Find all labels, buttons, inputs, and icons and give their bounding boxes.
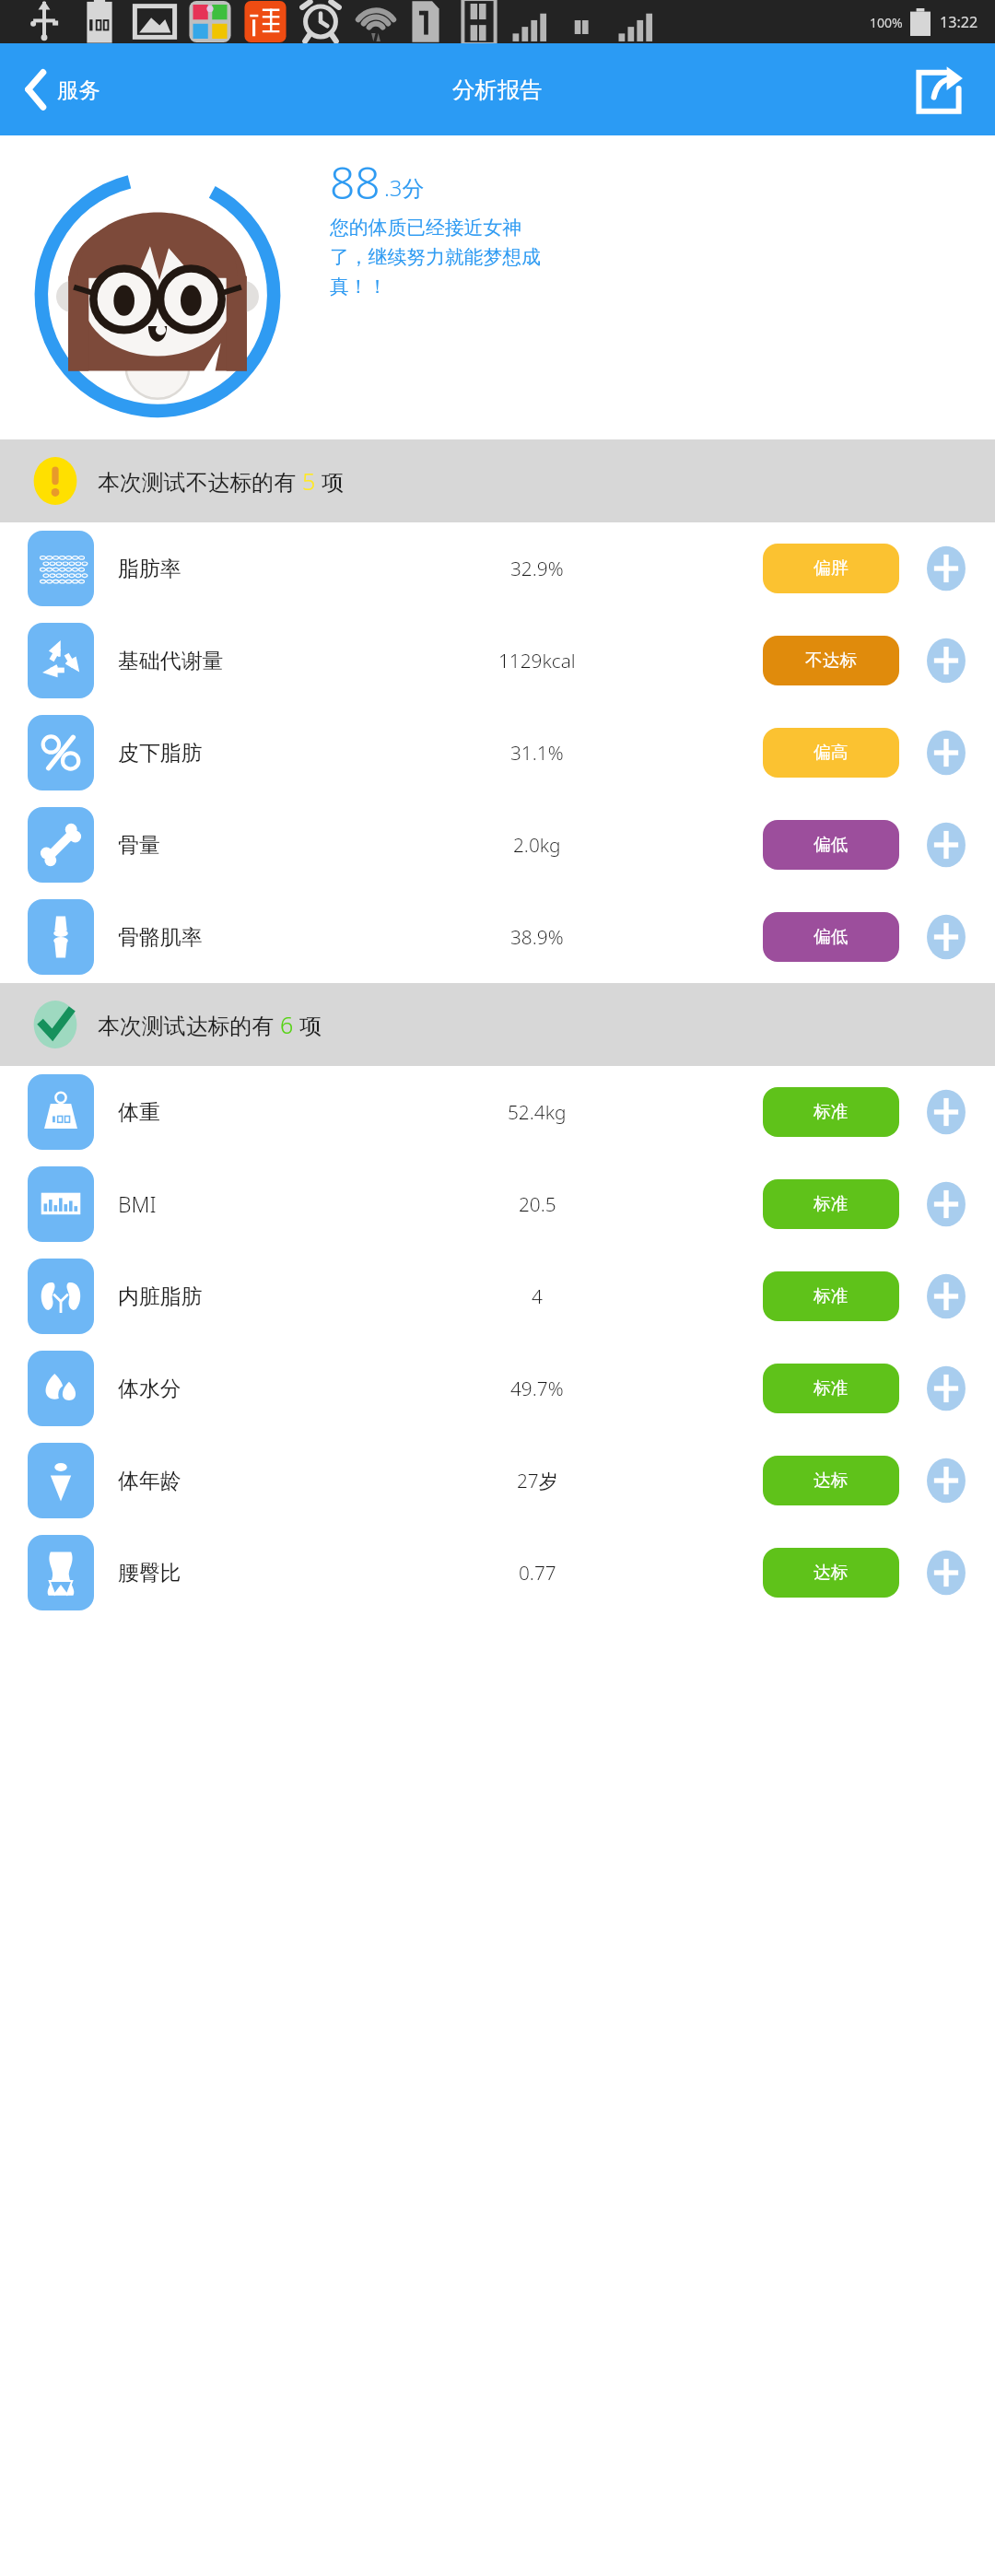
staticText: 偏低 bbox=[814, 926, 849, 948]
staticText: 服务 bbox=[57, 76, 100, 103]
staticText: 了，继续努力就能梦想成 bbox=[330, 245, 541, 269]
button[interactable]: 骨量 bbox=[0, 799, 995, 891]
staticText: 本次测试达标的有 bbox=[98, 1010, 280, 1040]
staticText: BMI bbox=[118, 1190, 157, 1219]
staticText: 达标 bbox=[814, 1469, 849, 1492]
button[interactable]: Add 内脏脂肪 bbox=[919, 1270, 973, 1323]
staticText: 27岁 bbox=[517, 1468, 558, 1493]
staticText: 4 bbox=[532, 1283, 543, 1309]
staticText: 您的体质已经接近女神 bbox=[330, 216, 521, 240]
button[interactable]: Add 骨骼肌率 bbox=[919, 910, 973, 964]
staticText: 2.0kg bbox=[513, 832, 561, 858]
staticText: 0.77 bbox=[519, 1560, 556, 1586]
button[interactable]: Add 体年龄 bbox=[919, 1454, 973, 1507]
staticText: 标准 bbox=[814, 1377, 849, 1399]
button[interactable]: 骨骼肌率 bbox=[0, 891, 995, 983]
staticText: 骨量 bbox=[118, 832, 160, 859]
staticText: 5 bbox=[302, 465, 316, 497]
staticText: 88 bbox=[330, 152, 380, 212]
staticText: 分析报告 bbox=[452, 76, 543, 104]
button[interactable]: Add 骨量 bbox=[919, 818, 973, 872]
button[interactable]: Add 基础代谢量 bbox=[919, 634, 973, 687]
staticText: 真！！ bbox=[330, 275, 388, 299]
button[interactable]: 基础代谢量 bbox=[0, 615, 995, 707]
button[interactable]: Add BMI bbox=[919, 1177, 973, 1231]
button[interactable]: 体重 bbox=[0, 1066, 995, 1158]
staticText: 49.7% bbox=[510, 1376, 564, 1401]
staticText: 20.5 bbox=[519, 1191, 556, 1217]
staticText: 皮下脂肪 bbox=[118, 740, 203, 767]
staticText: 标准 bbox=[814, 1101, 849, 1123]
staticText: 偏胖 bbox=[814, 557, 849, 580]
staticText: 13:22 bbox=[940, 12, 978, 32]
button[interactable]: 腰臀比 bbox=[0, 1527, 995, 1619]
button[interactable]: 皮下脂肪 bbox=[0, 707, 995, 799]
button[interactable]: 体年龄 bbox=[0, 1434, 995, 1527]
staticText: 52.4kg bbox=[508, 1099, 567, 1125]
button[interactable]: Add 体重 bbox=[919, 1085, 973, 1139]
staticText: 32.9% bbox=[510, 556, 564, 581]
button[interactable]: BMI bbox=[0, 1158, 995, 1250]
button[interactable]: 内脏脂肪 bbox=[0, 1250, 995, 1342]
staticText: 偏高 bbox=[814, 742, 849, 764]
staticText: 体年龄 bbox=[118, 1468, 181, 1494]
button[interactable]: Share bbox=[883, 46, 995, 133]
staticText: 标准 bbox=[814, 1285, 849, 1307]
staticText: 1129kcal bbox=[498, 648, 576, 673]
button[interactable]: Add 腰臀比 bbox=[919, 1546, 973, 1599]
button[interactable]: 体水分 bbox=[0, 1342, 995, 1434]
button[interactable]: 服务 bbox=[0, 60, 119, 119]
button[interactable]: Add 体水分 bbox=[919, 1362, 973, 1415]
staticText: 内脏脂肪 bbox=[118, 1283, 203, 1310]
staticText: 不达标 bbox=[805, 650, 858, 672]
staticText: 骨骼肌率 bbox=[118, 924, 203, 951]
staticText: 38.9% bbox=[510, 924, 564, 950]
staticText: 偏低 bbox=[814, 834, 849, 856]
staticText: 脂肪率 bbox=[118, 556, 181, 582]
staticText: 标准 bbox=[814, 1193, 849, 1215]
button[interactable]: Add 皮下脂肪 bbox=[919, 726, 973, 779]
staticText: 达标 bbox=[814, 1562, 849, 1584]
button[interactable]: 脂肪率 bbox=[0, 522, 995, 615]
staticText: 基础代谢量 bbox=[118, 648, 224, 674]
staticText: 项 bbox=[316, 466, 345, 497]
staticText: .3分 bbox=[384, 172, 425, 203]
staticText: 腰臀比 bbox=[118, 1560, 181, 1587]
staticText: 31.1% bbox=[510, 740, 564, 766]
staticText: 项 bbox=[294, 1010, 322, 1040]
button[interactable]: Add 脂肪率 bbox=[919, 542, 973, 595]
staticText: 体水分 bbox=[118, 1376, 181, 1402]
staticText: 6 bbox=[280, 1009, 294, 1040]
staticText: 体重 bbox=[118, 1099, 160, 1126]
staticText: 100% bbox=[870, 14, 903, 31]
staticText: 本次测试不达标的有 bbox=[98, 466, 302, 497]
